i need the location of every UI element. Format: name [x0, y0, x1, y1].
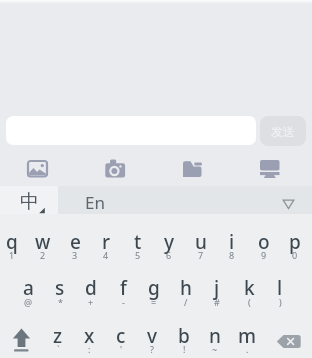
staticText: # — [214, 296, 220, 308]
button[interactable] — [62, 215, 93, 262]
button[interactable] — [109, 262, 140, 309]
staticText: 2 — [40, 249, 46, 261]
staticText: f — [120, 275, 127, 301]
button[interactable] — [73, 309, 104, 358]
staticText: + — [88, 296, 94, 308]
button[interactable] — [41, 309, 72, 358]
staticText: 5 — [135, 249, 141, 261]
button[interactable] — [281, 215, 312, 262]
staticText: - — [122, 296, 125, 308]
button[interactable] — [268, 186, 312, 214]
staticText: 中 — [20, 190, 39, 214]
staticText: l — [277, 275, 283, 301]
staticText: i — [229, 229, 235, 255]
button[interactable] — [104, 309, 135, 358]
staticText: 3 — [72, 249, 78, 261]
button[interactable] — [47, 262, 78, 309]
staticText: 发送 — [271, 124, 295, 139]
staticText: / — [184, 296, 188, 308]
staticText: r — [102, 229, 111, 255]
staticText: n — [209, 323, 221, 349]
button[interactable] — [78, 150, 156, 186]
button[interactable] — [261, 309, 312, 358]
button[interactable] — [16, 262, 47, 309]
staticText: 9 — [261, 249, 267, 261]
staticText: ( — [248, 296, 251, 308]
staticText: 6 — [166, 249, 172, 261]
staticText: 8 — [229, 249, 235, 261]
staticText: z — [53, 323, 63, 349]
staticText: a — [23, 275, 34, 301]
staticText: 7 — [198, 249, 204, 261]
button[interactable] — [0, 186, 58, 214]
staticText: m — [238, 323, 256, 349]
staticText: ) — [279, 296, 282, 308]
button[interactable] — [0, 215, 31, 262]
staticText: ' — [120, 343, 123, 355]
button[interactable] — [156, 150, 234, 186]
button[interactable] — [78, 262, 109, 309]
staticText: 0 — [292, 249, 298, 261]
button[interactable] — [62, 186, 124, 214]
button[interactable] — [94, 215, 125, 262]
staticText: t — [134, 229, 142, 255]
button[interactable] — [234, 262, 265, 309]
button[interactable] — [187, 215, 218, 262]
button[interactable] — [0, 150, 78, 186]
staticText: o — [258, 229, 270, 255]
button[interactable] — [156, 215, 187, 262]
staticText: y — [164, 229, 175, 255]
staticText: e — [70, 229, 81, 255]
staticText: c — [116, 323, 126, 349]
button[interactable] — [125, 215, 156, 262]
staticText: q — [6, 229, 18, 255]
staticText: u — [195, 229, 207, 255]
staticText: ! — [183, 343, 186, 355]
staticText: . — [246, 343, 249, 355]
button[interactable] — [218, 215, 249, 262]
staticText: k — [244, 275, 255, 301]
staticText: * — [58, 296, 63, 308]
staticText: b — [178, 323, 190, 349]
button[interactable] — [250, 215, 281, 262]
button[interactable] — [229, 309, 260, 358]
staticText: ? — [150, 343, 154, 355]
staticText: s — [55, 275, 65, 301]
button[interactable] — [172, 262, 203, 309]
staticText: @ — [24, 296, 33, 308]
button[interactable] — [167, 309, 198, 358]
staticText: v — [147, 323, 158, 349]
staticText: ~ — [212, 343, 218, 355]
staticText: h — [180, 275, 192, 301]
staticText: En — [85, 191, 105, 214]
button[interactable]: 发送 — [260, 116, 306, 146]
staticText: j — [214, 275, 220, 301]
staticText: p — [289, 229, 301, 255]
staticText: = — [151, 296, 157, 308]
staticText: ` — [57, 343, 60, 355]
button[interactable] — [203, 262, 234, 309]
staticText: x — [84, 323, 95, 349]
staticText: 4 — [103, 249, 109, 261]
button[interactable] — [234, 150, 312, 186]
button[interactable] — [198, 309, 229, 358]
button[interactable] — [265, 262, 296, 309]
button[interactable] — [31, 215, 62, 262]
button[interactable] — [140, 262, 171, 309]
button[interactable] — [135, 309, 166, 358]
button[interactable] — [0, 309, 41, 358]
staticText: 1 — [9, 249, 15, 261]
staticText: : — [88, 343, 91, 355]
staticText: g — [148, 275, 160, 301]
staticText: w — [35, 229, 51, 255]
staticText: d — [85, 275, 97, 301]
